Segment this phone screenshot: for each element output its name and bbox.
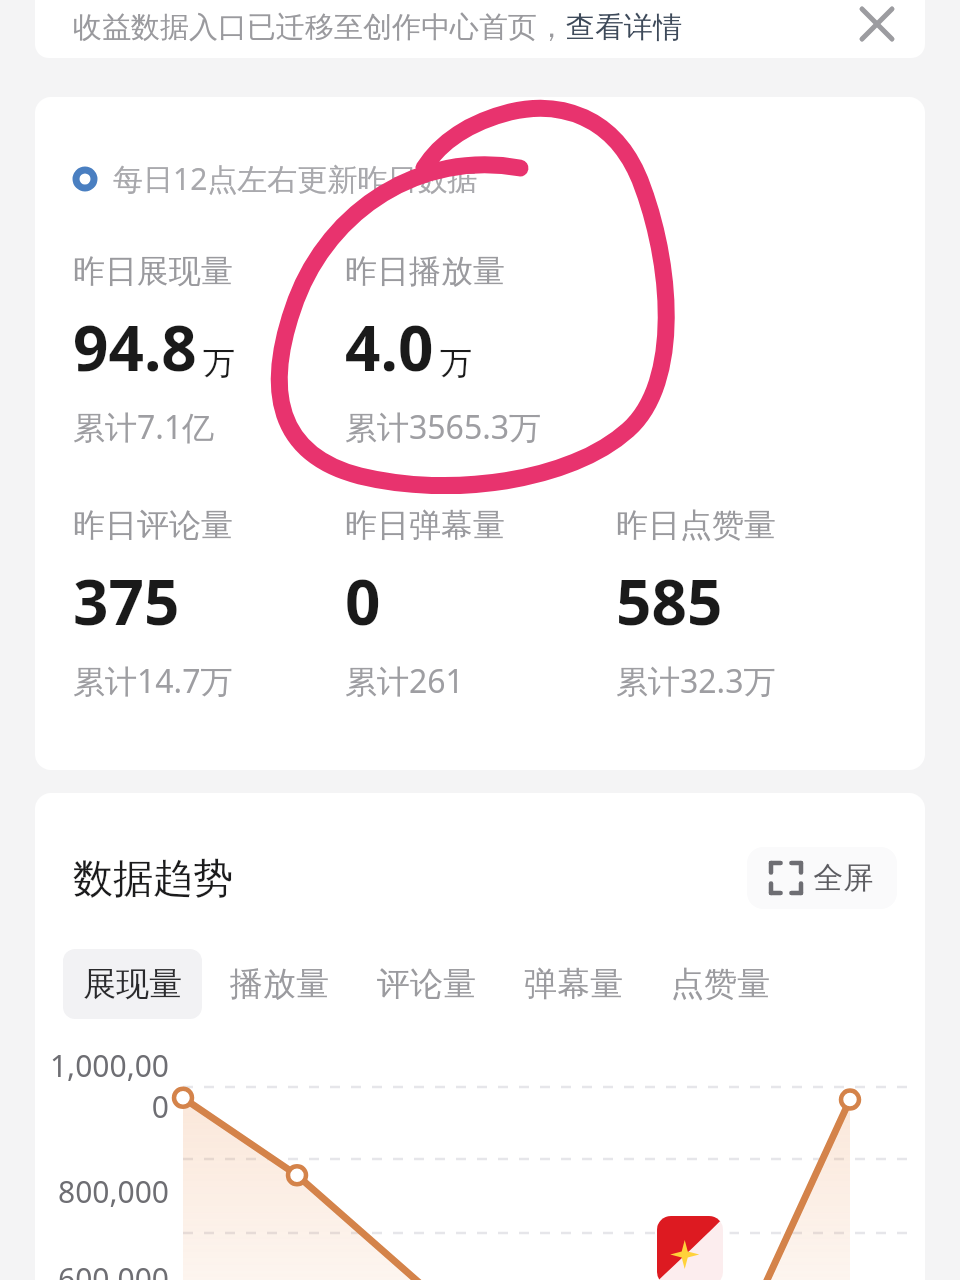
button[interactable]: 弹幕量 xyxy=(504,949,643,1019)
staticText: 收益数据入口已迁移至创作中心首页， xyxy=(73,9,566,46)
staticText: 万 xyxy=(203,343,235,383)
staticText: 昨日播放量 xyxy=(345,251,505,291)
button[interactable]: 关闭 xyxy=(849,0,905,52)
staticText: 昨日弹幕量 xyxy=(345,505,505,545)
staticText: 评论量 xyxy=(377,963,476,1005)
button[interactable]: 昨日评论量 xyxy=(73,505,345,703)
staticText: 累计3565.3万 xyxy=(345,405,542,449)
button[interactable]: 评论量 xyxy=(357,949,496,1019)
staticText: 4.0 xyxy=(345,305,434,389)
staticText: 累计261 xyxy=(345,659,464,703)
staticText: 累计14.7万 xyxy=(73,659,233,703)
staticText: 375 xyxy=(73,559,180,643)
staticText: 查看详情 xyxy=(566,9,682,46)
staticText: 累计7.1亿 xyxy=(73,405,215,449)
button[interactable]: 昨日弹幕量 xyxy=(345,505,616,703)
staticText: 全屏 xyxy=(813,859,873,897)
staticText: 1,000,000 xyxy=(35,1045,169,1127)
button[interactable]: 全屏 xyxy=(747,847,897,909)
button[interactable]: 每日12点左右更新昨日数据 xyxy=(73,158,478,199)
staticText: 展现量 xyxy=(83,963,182,1005)
button[interactable]: 昨日点赞量 xyxy=(616,505,887,703)
staticText: 昨日点赞量 xyxy=(616,505,776,545)
staticText: 94.8 xyxy=(73,305,197,389)
staticText: 昨日展现量 xyxy=(73,251,233,291)
button[interactable]: 播放量 xyxy=(210,949,349,1019)
staticText: 万 xyxy=(440,343,472,383)
staticText: 800,000 xyxy=(35,1171,169,1212)
staticText: 600,000 xyxy=(35,1258,169,1280)
staticText: 累计32.3万 xyxy=(616,659,776,703)
staticText: 585 xyxy=(616,559,723,643)
button[interactable]: 昨日展现量 xyxy=(73,251,345,449)
button[interactable]: 点赞量 xyxy=(651,949,790,1019)
button[interactable]: 昨日播放量 xyxy=(345,251,616,449)
staticText: 0 xyxy=(345,559,381,643)
staticText: 每日12点左右更新昨日数据 xyxy=(113,158,478,199)
staticText: 点赞量 xyxy=(671,963,770,1005)
staticText: 数据趋势 xyxy=(73,853,233,903)
button[interactable]: 查看详情 xyxy=(566,9,682,46)
staticText: 播放量 xyxy=(230,963,329,1005)
staticText: 弹幕量 xyxy=(524,963,623,1005)
button[interactable]: 展现量 xyxy=(63,949,202,1019)
staticText: 昨日评论量 xyxy=(73,505,233,545)
